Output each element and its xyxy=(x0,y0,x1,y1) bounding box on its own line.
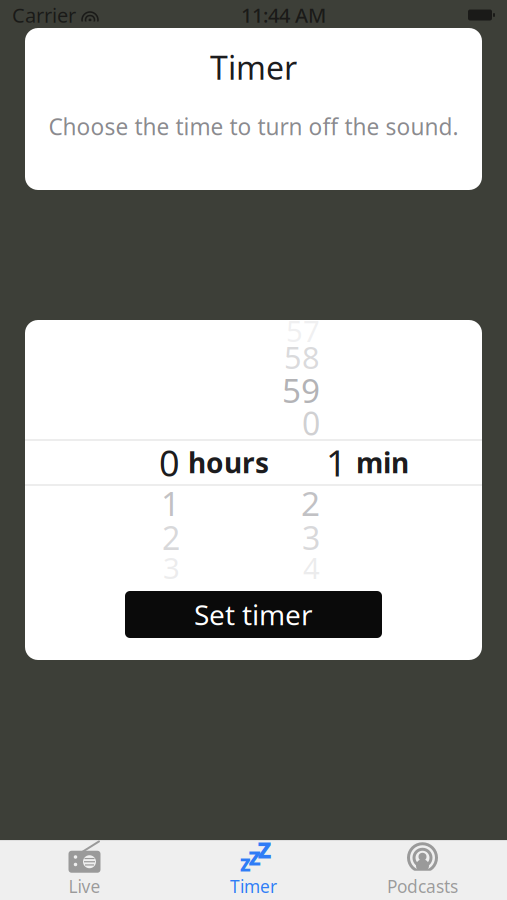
staticText: 3 xyxy=(163,548,180,587)
button[interactable]: Live xyxy=(0,841,169,899)
staticText: Live xyxy=(68,875,100,898)
staticText: 2 xyxy=(162,516,180,559)
staticText: min xyxy=(356,444,409,481)
button[interactable]: Z xyxy=(169,841,338,899)
staticText: 2 xyxy=(301,481,320,525)
staticText: Choose the time to turn off the sound. xyxy=(48,111,458,142)
staticText: 58 xyxy=(284,337,320,377)
staticText: Timer xyxy=(210,46,297,88)
staticText: Timer xyxy=(230,875,277,898)
button[interactable]: Podcasts xyxy=(338,841,507,899)
staticText: 4 xyxy=(303,548,320,587)
staticText: 57 xyxy=(286,311,320,350)
staticText: Carrier xyxy=(12,2,76,28)
button[interactable]: Set timer xyxy=(125,591,382,638)
staticText: 59 xyxy=(282,368,320,412)
staticText: 0 xyxy=(302,402,320,444)
staticText: Set timer xyxy=(194,596,313,633)
staticText: 1 xyxy=(161,481,180,525)
staticText: 3 xyxy=(302,516,320,559)
staticText: Z xyxy=(240,853,251,876)
staticText: Z xyxy=(257,835,271,865)
staticText: 0 xyxy=(159,439,180,486)
staticText: hours xyxy=(188,444,269,481)
staticText: Podcasts xyxy=(387,875,458,898)
staticText: 11:44 AM xyxy=(241,2,326,28)
staticText: Z xyxy=(248,844,260,871)
staticText: 1 xyxy=(326,439,347,486)
